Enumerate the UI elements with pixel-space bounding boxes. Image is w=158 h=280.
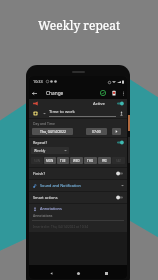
staticText: Weekly repeat <box>38 17 121 33</box>
staticText: WED <box>73 159 80 163</box>
button[interactable]: THU <box>84 157 97 164</box>
button[interactable]: Weekly <box>31 147 69 154</box>
staticText: Weekly <box>34 148 46 153</box>
staticText: Day and Time <box>33 121 55 126</box>
staticText: Annotations <box>40 206 62 211</box>
button[interactable]: Annotations <box>33 204 124 213</box>
staticText: MON <box>46 159 54 163</box>
button[interactable]: Toggle <box>116 195 124 200</box>
staticText: Smart actions <box>33 195 58 200</box>
button[interactable]: Delete <box>108 87 119 99</box>
button[interactable]: Recents <box>100 267 112 279</box>
button[interactable]: TUE <box>57 157 69 164</box>
button[interactable]: FRI <box>98 157 111 164</box>
staticText: FRI <box>102 159 107 163</box>
button[interactable]: Toggle <box>116 140 124 145</box>
staticText: Active <box>93 101 105 107</box>
button[interactable]: Home <box>72 267 84 279</box>
staticText: SAT <box>116 159 122 163</box>
button[interactable]: Toggle <box>116 101 124 106</box>
button[interactable]: Add time <box>112 128 121 135</box>
button[interactable]: WED <box>70 157 83 164</box>
button[interactable]: Toggle <box>116 171 124 176</box>
staticText: 10:33 <box>33 79 43 84</box>
staticText: Sound and Notification <box>40 183 81 188</box>
button[interactable]: Thu, 04/14/2022 <box>32 128 73 135</box>
button[interactable]: Back <box>29 87 40 99</box>
staticText: Time to work <box>49 109 75 115</box>
button[interactable]: 07:00 <box>86 128 107 135</box>
button[interactable]: More options <box>119 87 127 99</box>
staticText: Annotations <box>33 213 53 218</box>
staticText: Finish? <box>33 171 46 176</box>
button[interactable]: MON <box>44 157 56 164</box>
staticText: Change <box>46 90 64 97</box>
staticText: Repeat? <box>33 140 48 145</box>
button[interactable]: Save <box>97 87 108 99</box>
staticText: Thu, 04/14/2022 <box>40 129 66 134</box>
button[interactable]: Sound and Notification <box>29 180 127 191</box>
button[interactable]: SUN <box>31 157 43 164</box>
button[interactable]: SAT <box>112 157 125 164</box>
staticText: Inserted in: Thu, 04/14/2022 at 10:34 <box>33 225 88 229</box>
staticText: TUE <box>60 159 66 163</box>
staticText: THU <box>87 159 94 163</box>
staticText: 07:00 <box>92 129 101 134</box>
staticText: SUN <box>34 159 41 163</box>
button[interactable]: Back <box>45 267 57 279</box>
